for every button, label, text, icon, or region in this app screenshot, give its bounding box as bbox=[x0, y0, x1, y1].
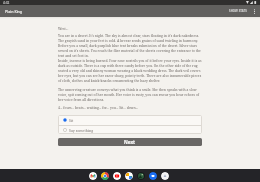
staticText: Inside, incense is being burned. Four no… bbox=[58, 58, 202, 63]
staticText: 4:32 bbox=[3, 1, 10, 5]
button[interactable]: More options bbox=[249, 6, 259, 16]
staticText: seated a very old and skinny woman weari… bbox=[58, 68, 201, 73]
button[interactable]: App bbox=[149, 172, 157, 180]
button[interactable]: App bbox=[137, 172, 145, 180]
button[interactable]: App bbox=[161, 172, 169, 180]
staticText: sewed on it's sheets. You reach the flie… bbox=[58, 48, 201, 53]
staticText: her eyes, but you can see her razor shar… bbox=[58, 73, 202, 78]
button[interactable]: Next bbox=[58, 138, 202, 146]
staticText: her voice from all directions. bbox=[58, 97, 104, 102]
button[interactable]: Sit bbox=[58, 115, 202, 125]
staticText: SHOW STATS bbox=[229, 9, 247, 13]
staticText: You are in a desert. It's night. The sky… bbox=[58, 33, 200, 38]
button[interactable]: Say something bbox=[58, 126, 202, 134]
staticText: tent and set foot in. bbox=[58, 53, 89, 58]
button[interactable]: App bbox=[113, 172, 121, 180]
button[interactable]: SHOW STATS bbox=[227, 7, 249, 15]
button[interactable]: App bbox=[89, 172, 97, 180]
staticText: Plain King bbox=[5, 9, 23, 14]
staticText: The grayish sand in your feet is cold. A… bbox=[58, 38, 198, 43]
staticText: of cloth, clothes and knick-knacks ornam… bbox=[58, 78, 161, 83]
staticText: dark as outside. There is a cup with thr… bbox=[58, 63, 198, 68]
staticText: voice, spit coming out of her mouth. Her… bbox=[58, 92, 200, 97]
button[interactable]: App bbox=[125, 172, 133, 180]
staticText: Before you a small, dark purplish blue t… bbox=[58, 43, 197, 48]
button[interactable]: App bbox=[101, 172, 109, 180]
staticText: West... bbox=[58, 26, 69, 31]
staticText: Sit bbox=[69, 118, 74, 123]
staticText: 4... fours... beats... waiting... for...… bbox=[58, 105, 139, 110]
staticText: Say something bbox=[69, 128, 94, 133]
staticText: The unnerving creature conveys what you … bbox=[58, 87, 197, 92]
staticText: Next bbox=[124, 139, 136, 145]
